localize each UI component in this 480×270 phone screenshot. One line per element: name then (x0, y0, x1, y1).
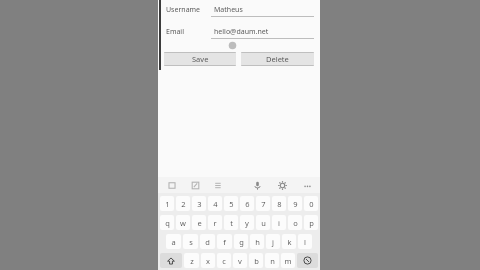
staticText: Matheus (214, 5, 243, 15)
staticText: Email (166, 27, 211, 37)
button[interactable]: 3 (192, 196, 206, 211)
button[interactable]: 4 (208, 196, 222, 211)
button[interactable]: More options (301, 179, 314, 192)
staticText: m (284, 256, 292, 266)
button[interactable]: Shift (160, 253, 182, 268)
button[interactable]: k (282, 234, 296, 249)
button[interactable]: a (166, 234, 181, 249)
staticText: 2 (181, 199, 186, 209)
staticText: f (223, 237, 226, 247)
staticText: v (238, 256, 242, 266)
staticText: c (222, 256, 226, 266)
staticText: t (230, 218, 233, 228)
button[interactable]: q (160, 215, 174, 230)
button[interactable]: r (208, 215, 222, 230)
button[interactable]: j (266, 234, 280, 249)
button[interactable]: Save (164, 52, 236, 66)
button[interactable]: d (200, 234, 215, 249)
staticText: 3 (197, 199, 202, 209)
button[interactable]: o (288, 215, 302, 230)
staticText: d (205, 237, 210, 247)
button[interactable]: Text (212, 179, 225, 192)
button[interactable]: p (304, 215, 318, 230)
button[interactable]: w (176, 215, 190, 230)
button[interactable]: hello@daum.net (211, 25, 314, 38)
staticText: z (190, 256, 194, 266)
button[interactable]: Settings (276, 179, 289, 192)
button[interactable]: 5 (224, 196, 238, 211)
button[interactable]: Matheus (211, 3, 314, 16)
staticText: 1 (165, 199, 170, 209)
button[interactable]: Sticker (189, 179, 202, 192)
staticText: x (206, 256, 210, 266)
staticText: 7 (261, 199, 266, 209)
button[interactable]: m (281, 253, 295, 268)
button[interactable]: h (250, 234, 264, 249)
staticText: 6 (245, 199, 250, 209)
staticText: g (239, 237, 244, 247)
staticText: y (245, 218, 249, 228)
staticText: 4 (213, 199, 218, 209)
staticText: Username (166, 5, 211, 15)
staticText: a (171, 237, 176, 247)
staticText: o (293, 218, 298, 228)
button[interactable]: f (217, 234, 232, 249)
staticText: k (287, 237, 292, 247)
button[interactable]: e (192, 215, 206, 230)
button[interactable]: s (183, 234, 198, 249)
staticText: l (304, 237, 306, 247)
staticText: w (180, 218, 186, 228)
staticText: 8 (277, 199, 282, 209)
button[interactable]: t (224, 215, 238, 230)
button[interactable]: 6 (240, 196, 254, 211)
button[interactable]: i (272, 215, 286, 230)
staticText: j (272, 237, 274, 247)
staticText: u (261, 218, 266, 228)
button[interactable]: y (240, 215, 254, 230)
staticText: n (270, 256, 275, 266)
staticText: e (197, 218, 202, 228)
button[interactable]: n (265, 253, 279, 268)
staticText: 9 (293, 199, 298, 209)
staticText: hello@daum.net (214, 27, 269, 37)
button[interactable]: Voice input (251, 179, 264, 192)
button[interactable]: 2 (176, 196, 190, 211)
staticText: h (255, 237, 260, 247)
staticText: 5 (229, 199, 234, 209)
staticText: 0 (309, 199, 314, 209)
staticText: Save (192, 54, 209, 64)
button[interactable]: v (233, 253, 247, 268)
staticText: p (309, 218, 314, 228)
staticText: i (278, 218, 280, 228)
button[interactable]: z (184, 253, 199, 268)
button[interactable]: b (249, 253, 263, 268)
button[interactable]: g (234, 234, 248, 249)
button[interactable]: 9 (288, 196, 302, 211)
staticText: q (165, 218, 170, 228)
button[interactable]: 1 (160, 196, 174, 211)
button[interactable]: x (201, 253, 215, 268)
staticText: b (254, 256, 259, 266)
staticText: Delete (266, 54, 289, 64)
button[interactable]: Clipboard (166, 179, 179, 192)
button[interactable]: Delete (241, 52, 314, 66)
staticText: s (189, 237, 193, 247)
button[interactable]: u (256, 215, 270, 230)
button[interactable]: 8 (272, 196, 286, 211)
staticText: r (213, 218, 217, 228)
button[interactable]: 7 (256, 196, 270, 211)
button[interactable]: 0 (304, 196, 318, 211)
button[interactable]: Backspace (297, 253, 318, 268)
button[interactable]: l (298, 234, 312, 249)
button[interactable]: c (217, 253, 231, 268)
